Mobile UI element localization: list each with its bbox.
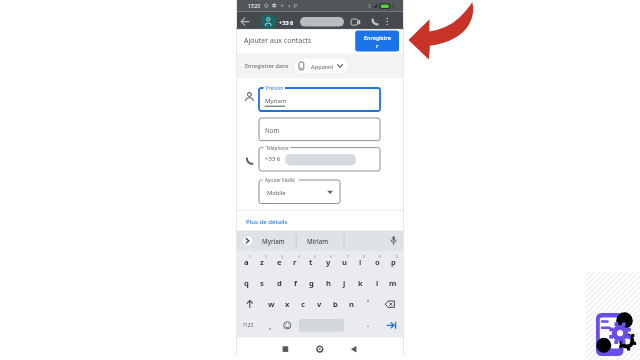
staticText: Miriam: [307, 237, 329, 245]
button[interactable]: a: [239, 256, 253, 268]
staticText: t: [309, 257, 313, 267]
button[interactable]: p: [386, 256, 400, 268]
button[interactable]: [346, 342, 360, 356]
button[interactable]: q: [239, 277, 253, 289]
staticText: P: [294, 3, 297, 9]
button[interactable]: .: [363, 319, 373, 329]
button[interactable]: [278, 342, 292, 356]
button[interactable]: f: [288, 277, 302, 289]
button[interactable]: o: [370, 256, 384, 268]
staticText: .: [367, 319, 370, 329]
button[interactable]: ': [363, 297, 373, 307]
staticText: k: [358, 278, 363, 288]
staticText: 0: [396, 254, 398, 259]
button[interactable]: [259, 148, 380, 171]
button[interactable]: d: [272, 277, 286, 289]
button[interactable]: [313, 342, 327, 356]
staticText: 3: [281, 254, 283, 259]
staticText: Plus de détails: [246, 218, 288, 226]
staticText: r: [293, 257, 297, 267]
staticText: ?123: [243, 322, 254, 329]
staticText: 1: [249, 254, 251, 259]
button[interactable]: [386, 233, 400, 249]
staticText: Téléphone: [266, 145, 289, 151]
button[interactable]: [280, 318, 294, 332]
button[interactable]: [381, 14, 393, 29]
staticText: i: [359, 257, 362, 267]
button[interactable]: x: [280, 298, 294, 310]
staticText: q: [244, 278, 249, 288]
button[interactable]: [298, 232, 342, 250]
staticText: f: [294, 278, 297, 288]
staticText: +33 6: [279, 19, 294, 27]
button[interactable]: n: [344, 298, 358, 310]
staticText: v: [317, 299, 322, 309]
button[interactable]: e: [272, 256, 286, 268]
button[interactable]: r: [288, 256, 302, 268]
button[interactable]: j: [337, 277, 351, 289]
staticText: 7: [347, 254, 349, 259]
button[interactable]: [383, 297, 399, 311]
staticText: w: [268, 299, 275, 309]
button[interactable]: k: [353, 277, 367, 289]
button[interactable]: m: [386, 277, 400, 289]
staticText: Enregistrer dans: [245, 62, 289, 70]
staticText: z: [260, 257, 264, 267]
button[interactable]: [240, 233, 256, 249]
button[interactable]: [243, 297, 257, 311]
staticText: 8: [363, 254, 365, 259]
button[interactable]: [238, 318, 251, 332]
button[interactable]: l: [370, 277, 384, 289]
staticText: p: [391, 257, 396, 267]
staticText: y: [326, 257, 331, 267]
button[interactable]: [367, 15, 382, 29]
button[interactable]: c: [296, 298, 310, 310]
staticText: c: [301, 299, 305, 309]
staticText: r: [376, 42, 379, 49]
button[interactable]: [259, 88, 380, 111]
button[interactable]: u: [337, 256, 351, 268]
button[interactable]: t: [304, 256, 318, 268]
staticText: a: [244, 257, 249, 267]
button[interactable]: z: [255, 256, 269, 268]
button[interactable]: [259, 118, 380, 141]
staticText: Ajouter aux contacts: [244, 36, 312, 46]
staticText: b: [333, 299, 338, 309]
staticText: Appareil: [311, 63, 334, 71]
staticText: j: [343, 278, 346, 288]
button[interactable]: s: [255, 277, 269, 289]
staticText: Myriam: [265, 97, 287, 105]
staticText: Myriam: [262, 237, 285, 245]
staticText: n: [349, 299, 354, 309]
staticText: Mobile: [267, 189, 286, 197]
staticText: u: [342, 257, 347, 267]
button[interactable]: [355, 31, 399, 52]
button[interactable]: ,: [265, 321, 275, 331]
staticText: 6: [330, 254, 332, 259]
button[interactable]: w: [264, 298, 278, 310]
button[interactable]: g: [304, 277, 318, 289]
staticText: g: [309, 278, 314, 288]
button[interactable]: [238, 14, 253, 29]
button[interactable]: v: [312, 298, 326, 310]
staticText: +33 6: [265, 155, 281, 163]
button[interactable]: b: [328, 298, 342, 310]
button[interactable]: [347, 15, 362, 29]
button[interactable]: [246, 215, 288, 227]
staticText: x: [285, 299, 290, 309]
staticText: o: [375, 257, 380, 267]
staticText: Ajouter libellé: [265, 177, 295, 183]
button[interactable]: [259, 180, 340, 204]
button[interactable]: i: [353, 256, 367, 268]
staticText: 9: [379, 254, 381, 259]
button[interactable]: h: [321, 277, 335, 289]
button[interactable]: [295, 59, 348, 73]
staticText: l: [376, 278, 379, 288]
staticText: ': [367, 297, 370, 307]
button[interactable]: [384, 318, 398, 332]
staticText: d: [277, 278, 282, 288]
staticText: s: [260, 278, 264, 288]
button[interactable]: y: [321, 256, 335, 268]
button[interactable]: [255, 232, 295, 250]
